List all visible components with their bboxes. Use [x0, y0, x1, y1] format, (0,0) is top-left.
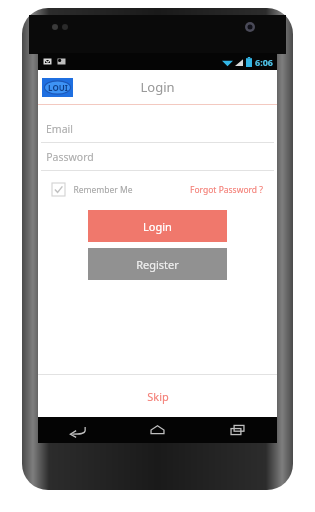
staticText: Login [140, 78, 175, 96]
button[interactable]: Remember Me [52, 183, 133, 196]
staticText: Skip [147, 389, 169, 404]
staticText: 6:06 [255, 56, 273, 68]
button[interactable]: Back [38, 417, 117, 443]
staticText: LOUI [48, 82, 68, 93]
staticText: Register [136, 257, 179, 272]
button[interactable]: Recents [197, 417, 277, 443]
staticText: Email [46, 122, 73, 136]
button[interactable]: Email [38, 115, 277, 143]
button[interactable]: Login [88, 210, 227, 242]
button[interactable]: Skip [38, 375, 277, 417]
staticText: Password [46, 150, 94, 164]
staticText: Remember Me [73, 184, 133, 196]
button[interactable]: App logo [42, 78, 73, 97]
staticText: Login [143, 219, 172, 234]
button[interactable]: Forgot Password ? [190, 184, 263, 196]
button[interactable]: Home [117, 417, 197, 443]
button[interactable]: Register [88, 248, 227, 280]
button[interactable]: Password [38, 143, 277, 171]
